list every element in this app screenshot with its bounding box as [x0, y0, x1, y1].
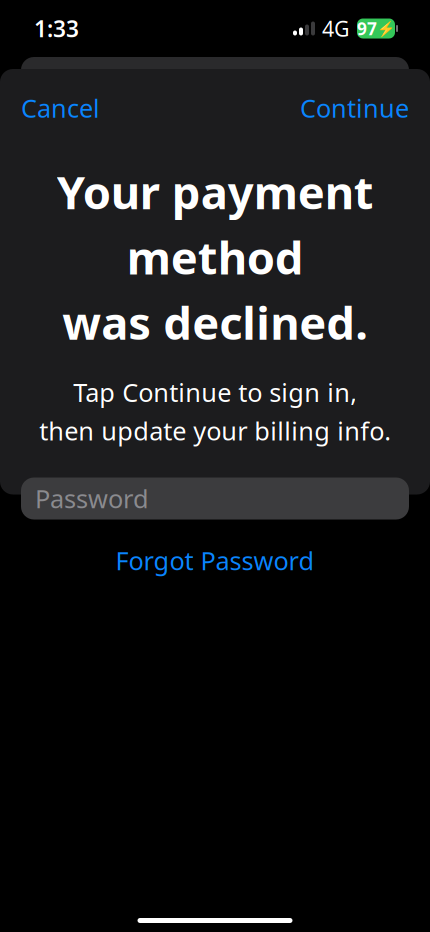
button[interactable]: Continue: [279, 80, 430, 136]
staticText: Password: [35, 482, 149, 515]
staticText: ⚡: [377, 20, 395, 37]
staticText: Continue: [300, 91, 409, 125]
staticText: Tap Continue to sign in, then update you…: [39, 375, 391, 447]
button[interactable]: Forgot Password: [95, 533, 334, 587]
staticText: Forgot Password: [115, 543, 314, 577]
staticText: 97: [357, 17, 377, 40]
staticText: Your payment method was declined.: [56, 162, 373, 352]
button[interactable]: Cancel: [0, 80, 121, 136]
button[interactable]: Password: [21, 477, 409, 519]
staticText: 4G: [322, 14, 350, 43]
staticText: 1:33: [34, 13, 79, 43]
staticText: Cancel: [21, 91, 100, 125]
